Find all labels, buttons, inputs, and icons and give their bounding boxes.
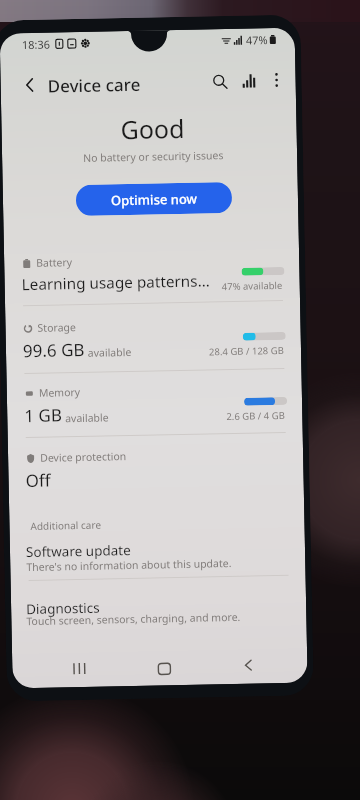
staticText: There's no information about this update…	[26, 556, 232, 574]
staticText: Good	[120, 111, 185, 146]
staticText: Device care	[47, 73, 141, 98]
button[interactable]	[11, 587, 307, 635]
button[interactable]	[8, 437, 304, 507]
button[interactable]: Device care	[47, 73, 141, 98]
staticText: Learning usage patterns...	[21, 270, 211, 295]
staticText: available	[85, 345, 132, 360]
staticText: 99.6 GB	[23, 338, 85, 362]
button[interactable]	[4, 243, 300, 312]
staticText: 1 GB	[24, 403, 63, 427]
staticText: 18:36	[22, 36, 51, 52]
staticText: Memory	[39, 385, 81, 400]
button[interactable]	[10, 532, 305, 580]
staticText: Off	[25, 469, 51, 492]
staticText: Battery	[36, 255, 72, 270]
button[interactable]: Search	[205, 67, 234, 95]
button[interactable]	[6, 373, 303, 442]
button[interactable]: Back	[232, 648, 265, 681]
staticText: 2.6 GB / 4 GB	[226, 409, 285, 423]
button[interactable]: Optimise now	[76, 182, 232, 216]
staticText: Storage	[37, 320, 77, 335]
button[interactable]	[5, 308, 301, 377]
button[interactable]: Back	[17, 73, 42, 97]
button[interactable]: More options	[262, 66, 291, 94]
staticText: 47%	[246, 32, 268, 48]
button[interactable]: Recents	[63, 652, 96, 684]
button[interactable]: Home	[148, 652, 181, 685]
staticText: Additional care	[30, 518, 102, 533]
button[interactable]: Usage chart	[234, 66, 263, 95]
staticText: Software update	[26, 541, 131, 561]
staticText: Touch screen, sensors, charging, and mor…	[26, 610, 240, 628]
staticText: Diagnostics	[26, 599, 100, 618]
staticText: Device protection	[40, 449, 127, 465]
staticText: 47% available	[222, 279, 283, 293]
staticText: No battery or security issues	[83, 148, 224, 165]
staticText: available	[62, 410, 109, 425]
staticText: 28.4 GB / 128 GB	[209, 344, 284, 358]
staticText: Optimise now	[111, 190, 198, 209]
